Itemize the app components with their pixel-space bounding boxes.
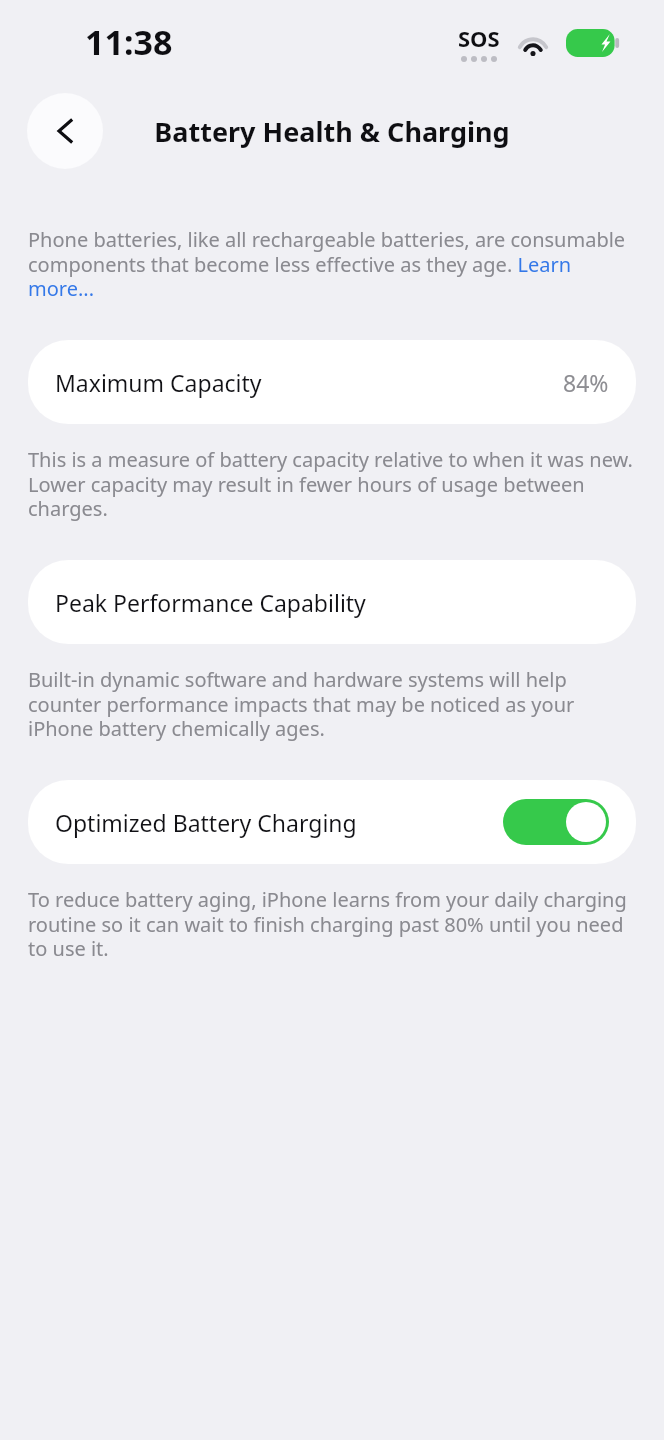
staticText: To reduce battery aging, iPhone learns f… (28, 886, 636, 962)
staticText: Battery Health & Charging (154, 113, 510, 150)
button[interactable]: Optimized Battery Charging (28, 780, 636, 864)
button[interactable]: Back (27, 93, 103, 169)
staticText: Phone batteries, like all rechargeable b… (28, 226, 636, 302)
staticText: Peak Performance Capability (55, 587, 366, 618)
staticText: 84% (563, 367, 609, 398)
staticText: Maximum Capacity (55, 367, 262, 398)
button[interactable]: Peak Performance Capability (28, 560, 636, 644)
button[interactable]: Optimized Battery Charging toggle (503, 799, 609, 845)
button[interactable]: Maximum Capacity (28, 340, 636, 424)
staticText: Built-in dynamic software and hardware s… (28, 666, 636, 742)
staticText: This is a measure of battery capacity re… (28, 446, 636, 522)
staticText: Optimized Battery Charging (55, 807, 357, 838)
staticText: 11:38 (85, 19, 173, 65)
staticText: SOS (458, 23, 500, 53)
